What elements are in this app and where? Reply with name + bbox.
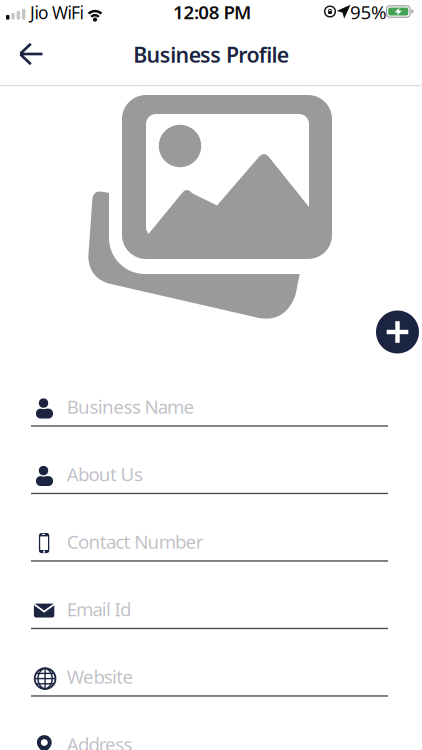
staticText: Business Name xyxy=(67,394,194,419)
button[interactable]: Business Name xyxy=(0,366,422,433)
button[interactable]: Email Id xyxy=(0,568,422,636)
staticText: Contact Number xyxy=(67,529,204,554)
staticText: Jio WiFi xyxy=(30,1,83,24)
staticText: Business Profile xyxy=(133,40,289,69)
button[interactable]: Add photo xyxy=(375,310,419,354)
staticText: 12:08 PM xyxy=(173,0,251,24)
button[interactable]: Website xyxy=(0,636,422,703)
staticText: 95% xyxy=(350,0,387,24)
button[interactable]: Contact Number xyxy=(0,501,422,568)
staticText: About Us xyxy=(67,462,143,486)
staticText: Address xyxy=(67,732,133,750)
button[interactable]: About Us xyxy=(0,433,422,501)
staticText: Website xyxy=(67,664,134,689)
staticText: Email Id xyxy=(67,597,131,621)
button[interactable]: Address xyxy=(0,703,422,750)
button[interactable]: Back xyxy=(10,32,54,76)
